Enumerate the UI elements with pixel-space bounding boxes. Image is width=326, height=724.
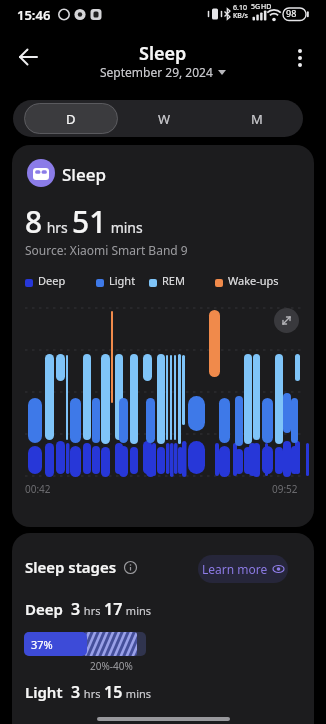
staticText: Learn more [202,561,268,577]
staticText: 98 [286,7,297,19]
staticText: 20%-40% [90,659,133,673]
button[interactable]: D [24,103,118,134]
staticText: 15:46 [17,6,51,24]
staticText: 6.10 [233,3,247,13]
staticText: September 29, 2024 [100,64,213,80]
staticText: 17 [104,598,123,620]
staticText: 8 [25,201,43,242]
button[interactable] [124,561,137,574]
staticText: D [66,110,76,128]
staticText: M [251,110,263,128]
staticText: hrs [43,218,72,237]
staticText: 37% [31,637,53,652]
button[interactable] [288,44,312,72]
staticText: 3 [71,681,81,703]
staticText: W [158,110,171,128]
staticText: Sleep stages [25,557,117,577]
staticText: REM [162,273,185,288]
staticText: Light [109,273,136,288]
staticText: Sleep [139,41,187,66]
staticText: Deep [38,273,66,288]
staticText: 51 [72,201,107,242]
staticText: Source: Xiaomi Smart Band 9 [25,242,188,258]
staticText: mins [107,218,143,237]
staticText: hrs [81,603,104,618]
staticText: 00:42 [25,482,51,496]
staticText: mins [123,603,152,618]
button[interactable]: M [211,100,303,137]
staticText: Wake-ups [228,273,279,288]
staticText: Light [25,682,63,702]
staticText: Deep [25,599,63,619]
staticText: 5G [251,2,261,12]
staticText: hrs [81,686,104,701]
button[interactable]: September 29, 2024 [100,64,226,80]
staticText: 3 [71,598,81,620]
staticText: mins [123,686,152,701]
staticText: HD [261,2,272,12]
button[interactable] [274,308,299,333]
staticText: 15 [104,681,123,703]
staticText: KB/s [233,11,248,21]
button[interactable]: Learn more [198,555,288,583]
button[interactable]: W [118,100,211,137]
staticText: 09:52 [272,482,298,496]
button[interactable] [12,42,44,72]
staticText: Sleep [62,163,106,186]
